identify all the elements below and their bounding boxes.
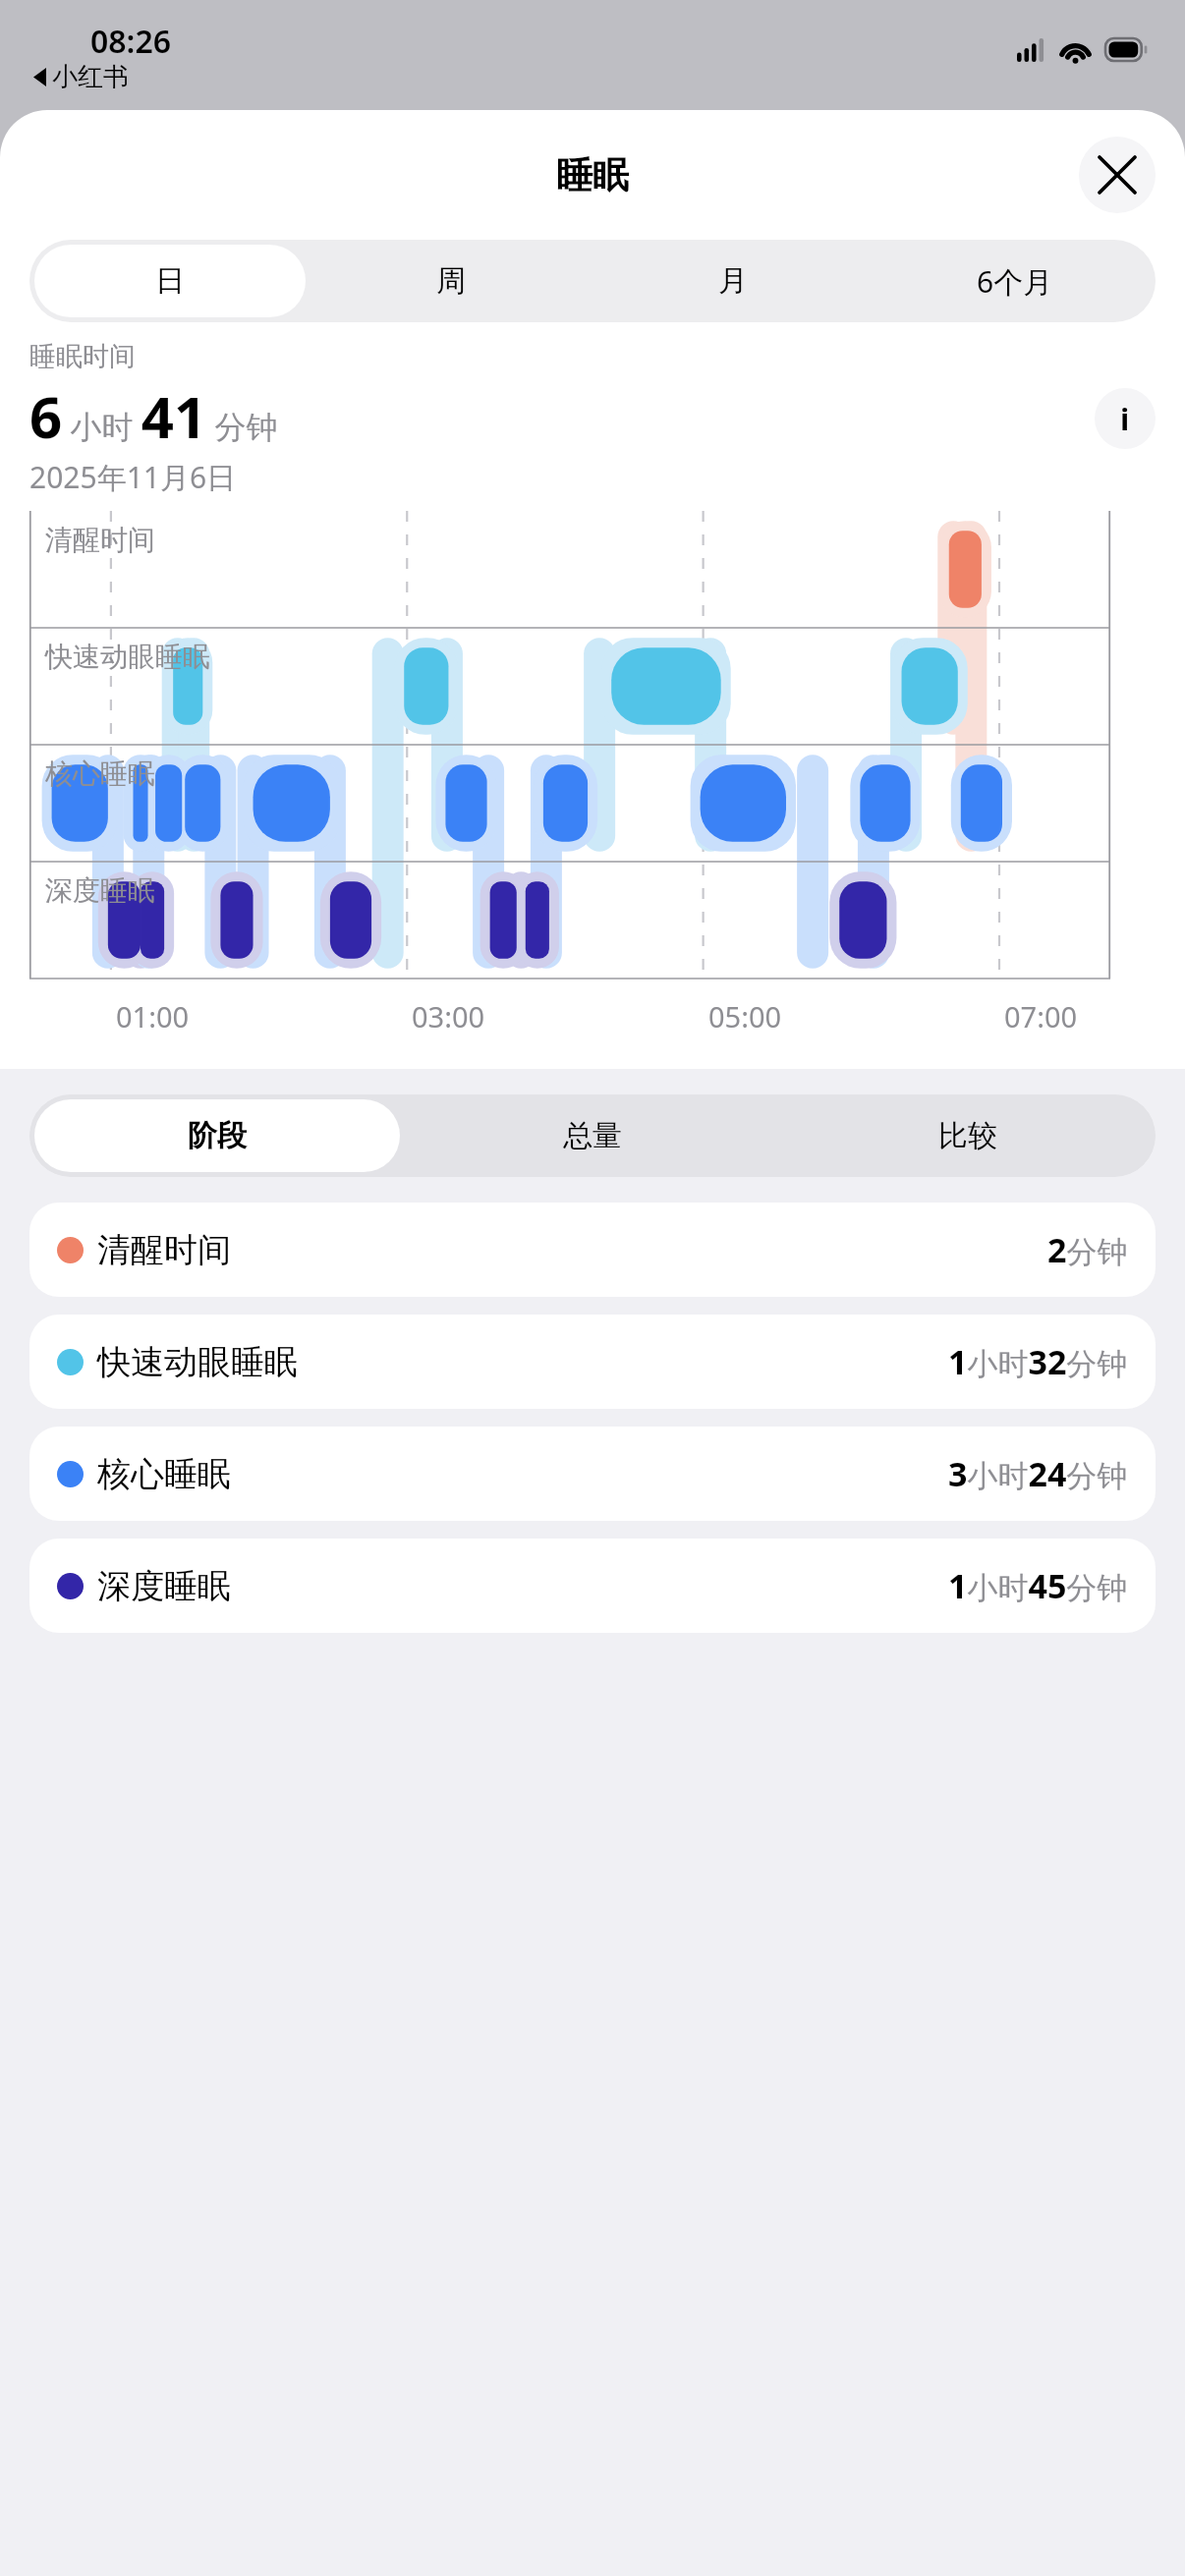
staticText: 快速动眼睡眠 — [45, 640, 210, 674]
staticText: 清醒时间 — [45, 523, 155, 557]
staticText: 2025年11月6日 — [29, 457, 237, 497]
button[interactable]: 比较 — [785, 1099, 1151, 1172]
button[interactable]: 深度睡眠 — [29, 1539, 1156, 1633]
button[interactable]: 清醒时间 — [29, 1203, 1156, 1297]
staticText: 睡眠时间 — [29, 340, 136, 373]
staticText: 05:00 — [708, 997, 782, 1036]
button[interactable]: 总量 — [410, 1099, 775, 1172]
staticText: i — [1120, 398, 1130, 439]
staticText: 2分钟 — [1047, 1227, 1128, 1272]
staticText: 睡眠 — [556, 152, 629, 198]
staticText: 核心睡眠 — [45, 756, 155, 791]
button[interactable]: 快速动眼睡眠 — [29, 1315, 1156, 1409]
button[interactable]: 6个月 — [878, 245, 1151, 317]
staticText: 比较 — [938, 1117, 997, 1154]
button[interactable]: 信息 — [1095, 388, 1156, 449]
staticText: 总量 — [563, 1117, 622, 1154]
staticText: 1小时32分钟 — [948, 1339, 1128, 1384]
staticText: 07:00 — [1004, 997, 1078, 1036]
staticText: 08:26 — [90, 20, 172, 63]
staticText: 快速动眼睡眠 — [97, 1341, 298, 1383]
staticText: 深度睡眠 — [45, 873, 155, 908]
button[interactable]: 月 — [596, 245, 869, 317]
staticText: 小红书 — [52, 61, 129, 93]
staticText: 核心睡眠 — [97, 1453, 231, 1495]
staticText: 深度睡眠 — [97, 1565, 231, 1607]
staticText: 1小时45分钟 — [948, 1563, 1128, 1608]
staticText: 03:00 — [412, 997, 485, 1036]
staticText: 日 — [155, 262, 185, 300]
button[interactable]: 核心睡眠 — [29, 1427, 1156, 1521]
button[interactable]: 阶段 — [34, 1099, 400, 1172]
staticText: 6 小时 41 分钟 — [29, 377, 278, 455]
button[interactable]: 日 — [34, 245, 306, 317]
staticText: 3小时24分钟 — [948, 1451, 1128, 1496]
staticText: 6个月 — [977, 261, 1053, 302]
button[interactable]: 关闭 — [1079, 137, 1156, 213]
staticText: 阶段 — [188, 1117, 247, 1154]
staticText: 月 — [718, 262, 748, 300]
button[interactable]: 周 — [315, 245, 587, 317]
staticText: 周 — [436, 262, 466, 300]
staticText: 01:00 — [116, 997, 190, 1036]
staticText: 清醒时间 — [97, 1229, 231, 1271]
